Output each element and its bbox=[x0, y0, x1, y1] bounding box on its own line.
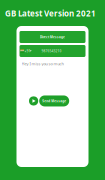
staticText: Direct Message bbox=[40, 35, 65, 39]
button[interactable]: Send Message bbox=[39, 95, 69, 106]
button[interactable]: Direct Message bbox=[19, 31, 85, 43]
button[interactable]: +91 bbox=[19, 45, 85, 57]
staticText: +91 bbox=[25, 49, 31, 53]
button[interactable]: Play bbox=[29, 96, 38, 105]
staticText: Send Message bbox=[42, 99, 66, 103]
staticText: GB Latest Version 2021 bbox=[5, 8, 96, 19]
staticText: 9876543210 bbox=[42, 49, 62, 53]
staticText: Hey I miss you so much bbox=[21, 61, 63, 66]
